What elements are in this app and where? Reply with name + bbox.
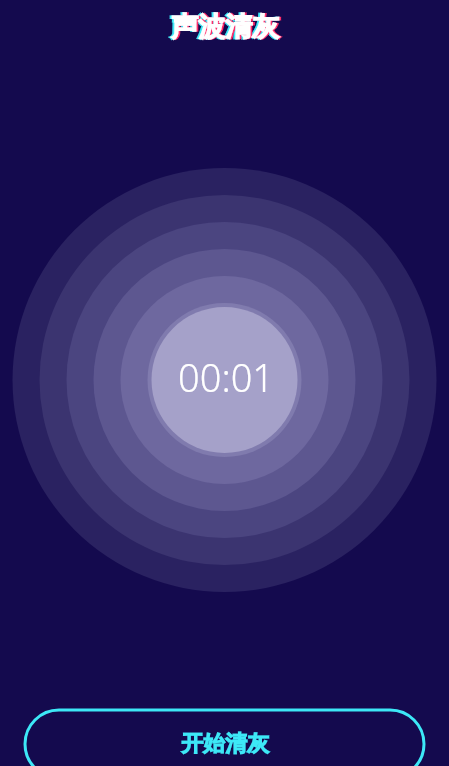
staticText: 声波清灰 (169, 10, 277, 44)
staticText: 00:01 (178, 351, 275, 403)
staticText: 声波清灰 (171, 10, 279, 44)
staticText: 声波清灰 (173, 10, 281, 44)
button[interactable]: 开始清灰 (25, 710, 424, 766)
staticText: 开始清灰 (181, 730, 269, 758)
